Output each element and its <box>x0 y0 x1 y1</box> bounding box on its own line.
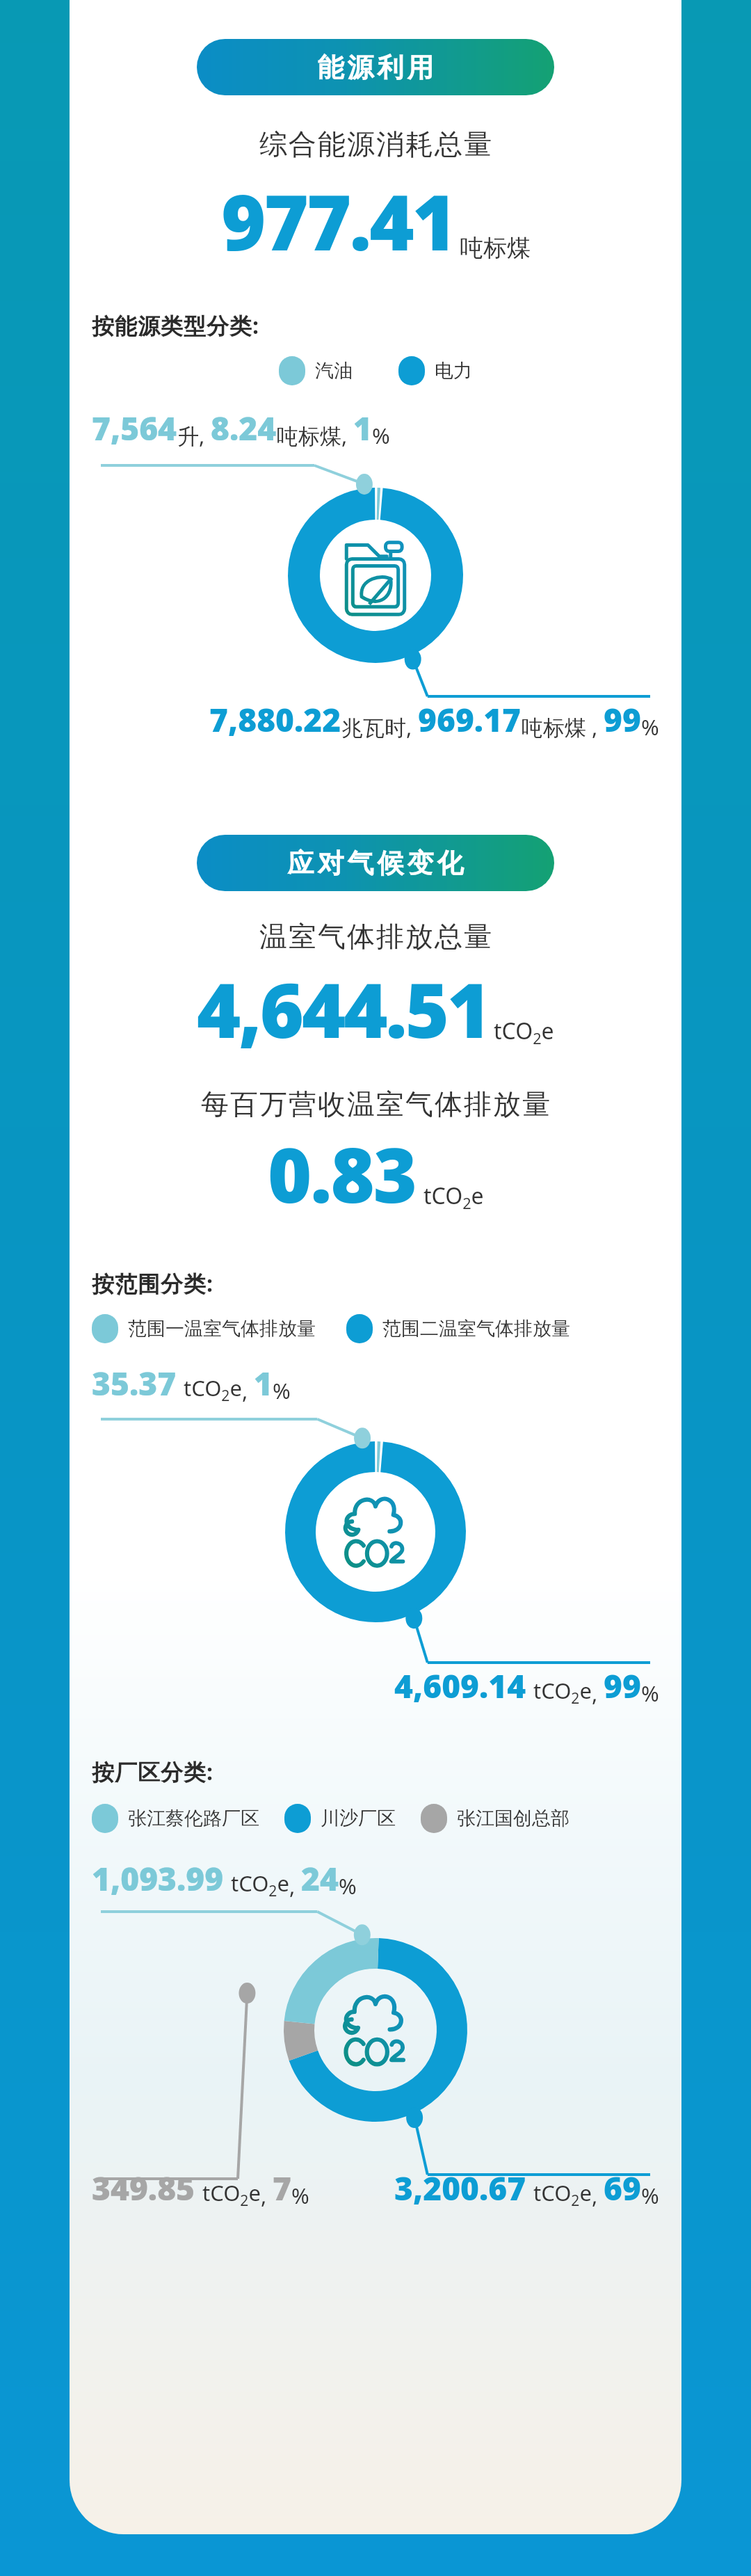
staticText: 综合能源消耗总量 <box>259 127 492 161</box>
staticText: 升 <box>177 423 199 450</box>
button[interactable]: 应对气候变化 <box>197 835 554 891</box>
staticText: 7,880.22 <box>209 698 341 742</box>
staticText: 0.83 <box>268 1123 417 1225</box>
button[interactable]: 川沙厂区 <box>284 1804 396 1833</box>
staticText: 4,609.14 <box>394 1664 526 1708</box>
staticText: tCO2e <box>202 2178 261 2210</box>
staticText: , <box>586 712 604 742</box>
staticText: 按厂区分类: <box>92 1757 213 1787</box>
staticText: 川沙厂区 <box>321 1807 396 1830</box>
staticText: tCO2e <box>423 1181 484 1214</box>
staticText: tCO2e <box>231 1869 289 1901</box>
staticText: 35.37 <box>92 1361 177 1405</box>
staticText: 每百万营收温室气体排放量 <box>200 1087 551 1121</box>
staticText: , <box>289 1871 301 1901</box>
staticText: 吨标煤 <box>460 233 531 263</box>
button[interactable]: 张江蔡伦路厂区 <box>92 1804 259 1833</box>
staticText: tCO2e <box>533 2178 592 2210</box>
staticText: 按能源类型分类: <box>92 310 259 341</box>
staticText: 99 <box>604 698 641 742</box>
staticText: 张江国创总部 <box>457 1807 570 1830</box>
staticText: % <box>273 1376 291 1405</box>
staticText: , <box>341 421 353 450</box>
staticText: 按范围分类: <box>92 1268 213 1299</box>
staticText: 范围二温室气体排放量 <box>382 1317 570 1341</box>
staticText: 969.17 <box>418 698 522 742</box>
staticText: 7,564 <box>92 406 177 450</box>
button[interactable]: 范围二温室气体排放量 <box>346 1314 570 1343</box>
staticText: 张江蔡伦路厂区 <box>128 1807 259 1830</box>
staticText: , <box>592 1679 604 1708</box>
staticText: tCO2e <box>494 1016 554 1049</box>
staticText: 1 <box>353 406 372 450</box>
staticText: , <box>199 421 211 450</box>
staticText: 范围一温室气体排放量 <box>128 1317 316 1341</box>
button[interactable]: 汽油 <box>279 356 353 385</box>
staticText: tCO2e <box>184 1373 242 1405</box>
button[interactable]: 电力 <box>398 356 472 385</box>
button[interactable]: 张江国创总部 <box>421 1804 570 1833</box>
staticText: 1,093.99 <box>92 1857 224 1901</box>
staticText: 3,200.67 <box>394 2166 526 2210</box>
staticText: 兆瓦时 <box>341 714 406 742</box>
staticText: 7 <box>273 2166 291 2210</box>
staticText: 吨标煤 <box>522 714 586 742</box>
staticText: 99 <box>604 1664 641 1708</box>
staticText: 能源利用 <box>316 51 435 84</box>
staticText: % <box>372 421 390 450</box>
staticText: % <box>641 712 659 742</box>
staticText: 8.24 <box>211 406 277 450</box>
staticText: 24 <box>301 1857 339 1901</box>
staticText: 977.41 <box>221 168 455 273</box>
staticText: , <box>592 2181 604 2210</box>
staticText: % <box>291 2181 309 2210</box>
staticText: , <box>261 2181 273 2210</box>
staticText: 349.85 <box>92 2166 195 2210</box>
button[interactable]: 能源利用 <box>197 39 554 95</box>
staticText: 69 <box>604 2166 641 2210</box>
button[interactable]: 范围一温室气体排放量 <box>92 1314 316 1343</box>
staticText: 1 <box>254 1361 273 1405</box>
staticText: 应对气候变化 <box>286 847 465 880</box>
staticText: tCO2e <box>533 1676 592 1708</box>
staticText: 吨标煤 <box>277 423 341 450</box>
staticText: 汽油 <box>315 359 353 383</box>
staticText: , <box>406 712 418 742</box>
staticText: , <box>242 1376 254 1405</box>
staticText: 温室气体排放总量 <box>259 919 492 954</box>
staticText: % <box>641 1679 659 1708</box>
staticText: 4,644.51 <box>197 958 490 1060</box>
staticText: % <box>641 2181 659 2210</box>
staticText: 电力 <box>435 359 472 383</box>
staticText: % <box>339 1871 357 1901</box>
